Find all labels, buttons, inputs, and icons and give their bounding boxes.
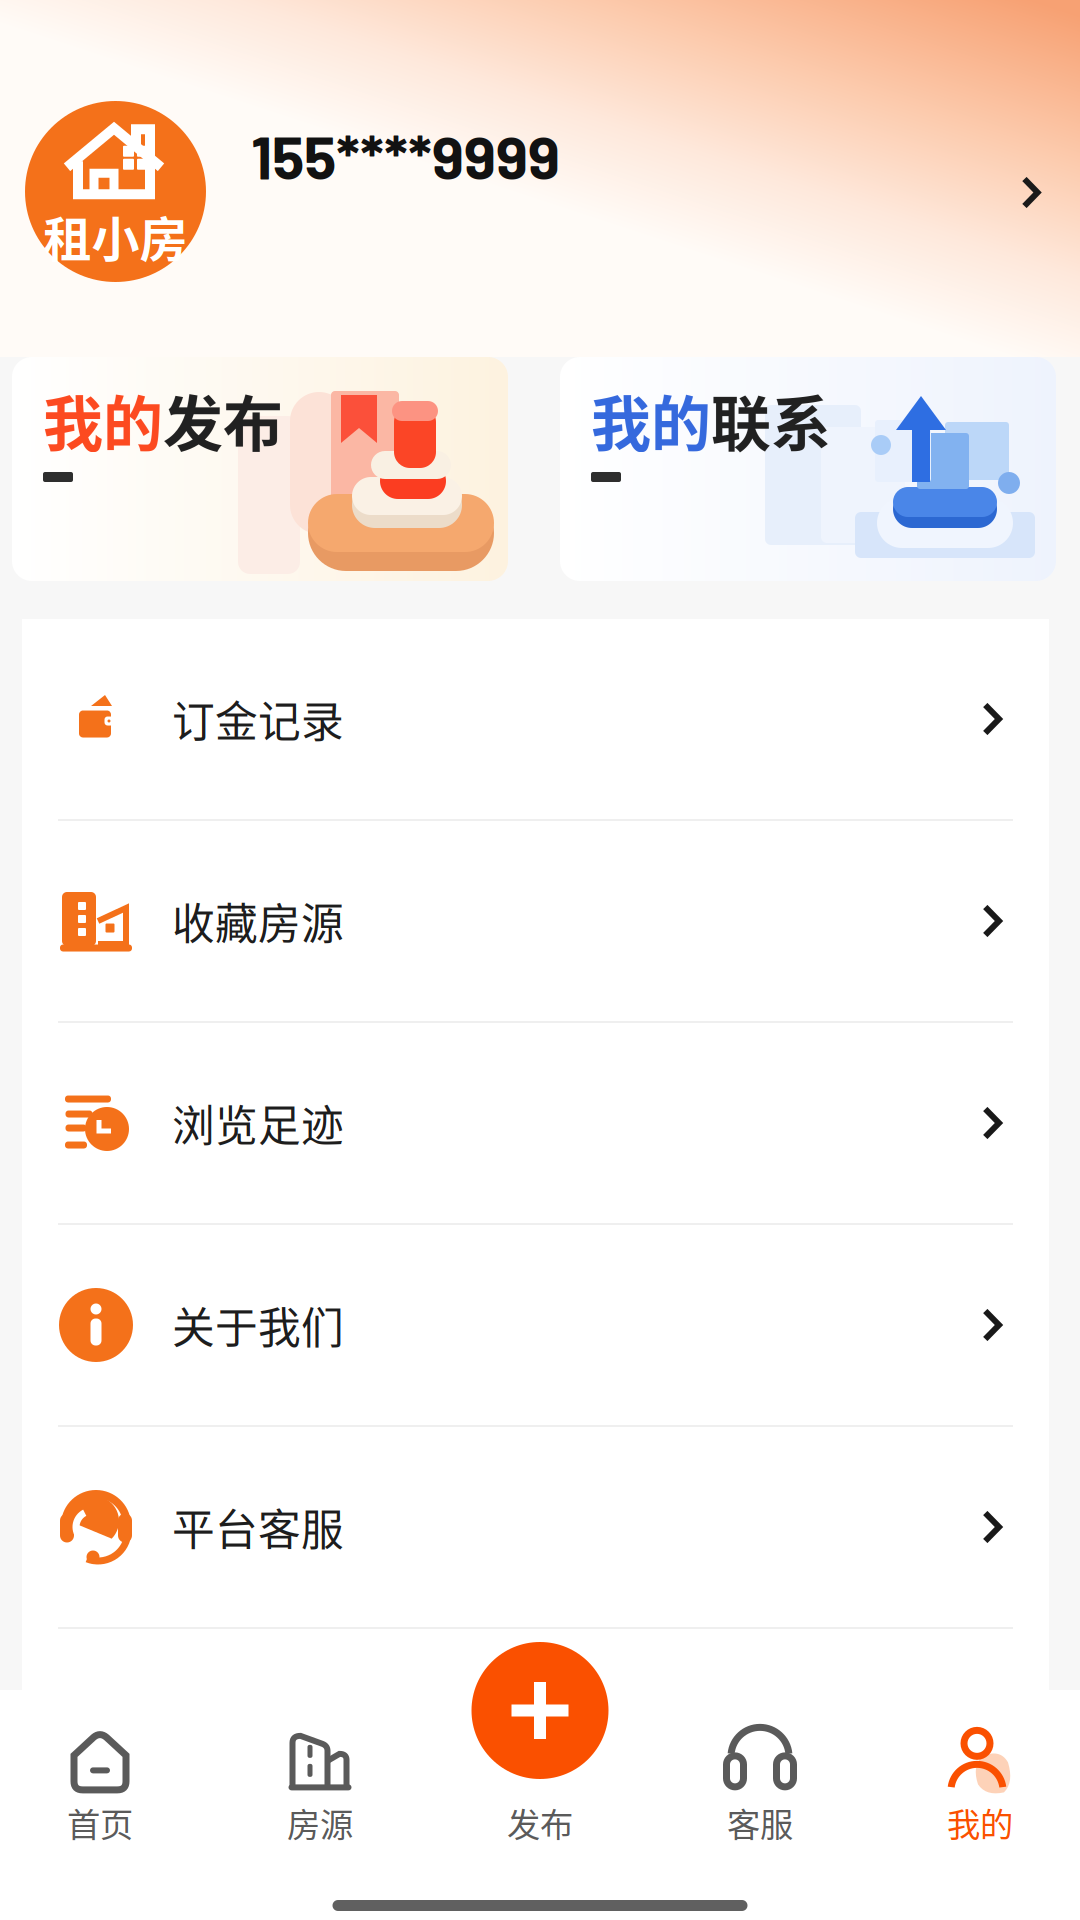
staticText: 发布 — [163, 377, 283, 463]
staticText: 我的 — [947, 1798, 1013, 1847]
staticText: 客服 — [727, 1798, 793, 1847]
staticText: 关于我们 — [172, 1294, 344, 1356]
button[interactable]: 我的 — [12, 357, 508, 581]
staticText: 平台客服 — [172, 1496, 344, 1558]
staticText: 我的 — [43, 377, 163, 463]
staticText: 租小房 — [43, 201, 187, 271]
button[interactable]: 我的 — [870, 1716, 1080, 1856]
button[interactable]: 浏览足迹 — [22, 1023, 1049, 1223]
staticText: 发布 — [507, 1798, 573, 1847]
staticText: 收藏房源 — [172, 890, 344, 952]
staticText: 首页 — [67, 1798, 133, 1847]
button[interactable]: 客服 — [650, 1716, 870, 1856]
button[interactable]: 首页 — [0, 1716, 210, 1856]
staticText: 订金记录 — [172, 688, 344, 750]
staticText: 我的 — [591, 377, 711, 463]
button[interactable]: 平台客服 — [22, 1427, 1049, 1627]
button[interactable]: 发布 — [430, 1716, 650, 1856]
button[interactable]: 房源 — [210, 1716, 430, 1856]
staticText: 155****9999 — [251, 119, 560, 191]
button[interactable]: 发布 — [471, 1642, 608, 1779]
button[interactable]: 账号设置 — [1001, 162, 1061, 222]
staticText: 联系 — [711, 377, 831, 463]
button[interactable]: 订金记录 — [22, 619, 1049, 819]
button[interactable]: 关于我们 — [22, 1225, 1049, 1425]
staticText: 浏览足迹 — [172, 1092, 344, 1154]
staticText: 房源 — [287, 1798, 353, 1847]
button[interactable]: 收藏房源 — [22, 821, 1049, 1021]
button[interactable]: 我的 — [560, 357, 1056, 581]
